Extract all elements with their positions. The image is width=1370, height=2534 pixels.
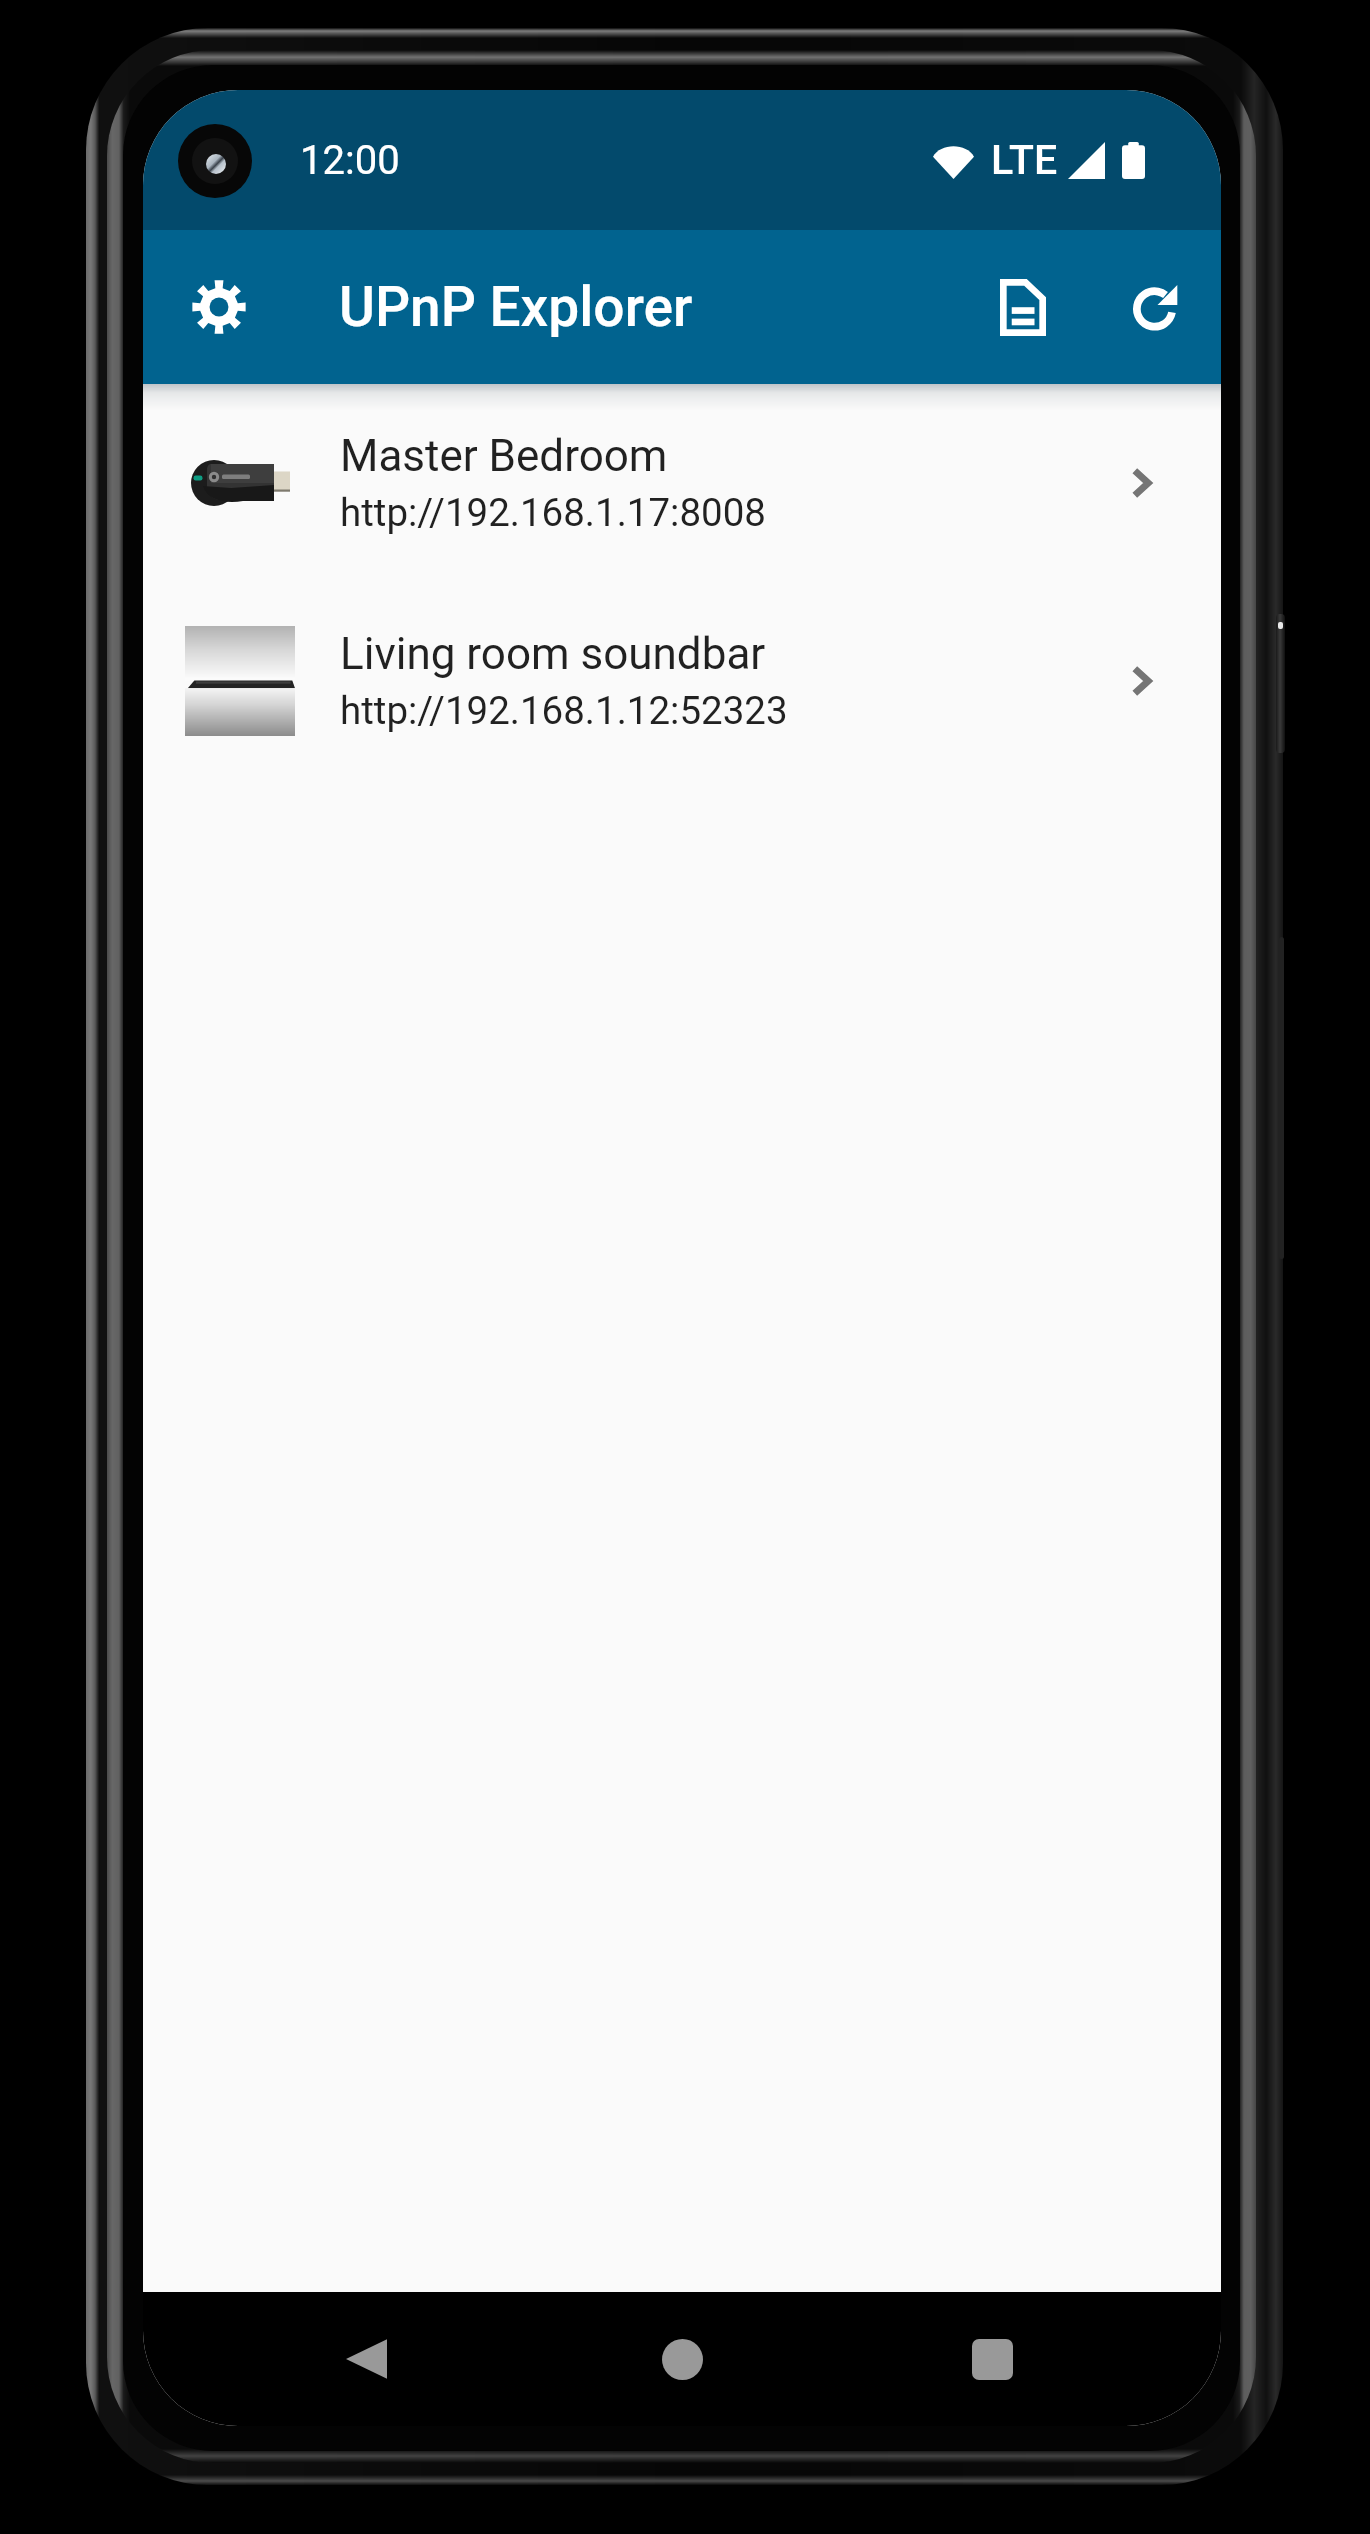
button[interactable]: Refresh [1100, 252, 1210, 362]
button[interactable]: Settings [165, 253, 273, 361]
button[interactable]: Device description [968, 252, 1078, 362]
staticText: Master Bedroom [340, 430, 668, 482]
button[interactable]: Back [311, 2304, 421, 2414]
button[interactable]: Home [627, 2304, 737, 2414]
staticText: Living room soundbar [340, 628, 766, 680]
staticText: http://192.168.1.17:8008 [340, 490, 766, 535]
staticText: LTE [991, 136, 1058, 184]
staticText: http://192.168.1.12:52323 [340, 688, 788, 733]
button[interactable]: Living room soundbar [143, 582, 1221, 780]
staticText: 12:00 [300, 137, 400, 184]
button[interactable]: Recents [937, 2304, 1047, 2414]
staticText: UPnP Explorer [339, 275, 693, 339]
button[interactable]: Master Bedroom [143, 384, 1221, 582]
